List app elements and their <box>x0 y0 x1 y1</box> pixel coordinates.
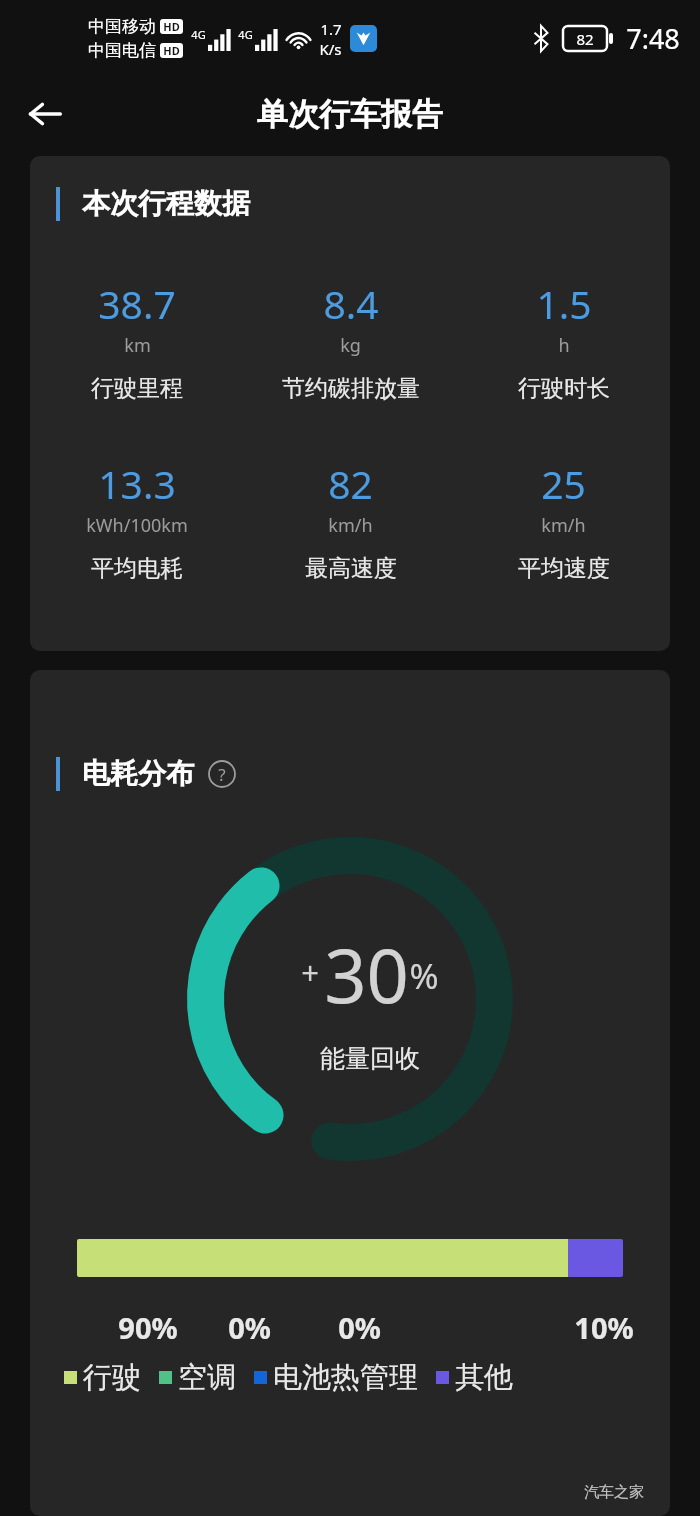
staticText: 82 <box>576 29 594 49</box>
staticText: 4G <box>191 27 206 42</box>
staticText: 汽车之家 <box>584 1483 644 1502</box>
staticText: km <box>124 333 151 358</box>
button[interactable]: 空调 <box>159 1359 236 1396</box>
staticText: h <box>558 333 570 358</box>
staticText: km/h <box>541 513 586 538</box>
staticText: 行驶里程 <box>91 374 183 403</box>
staticText: 最高速度 <box>305 554 397 583</box>
staticText: 82 <box>328 457 373 510</box>
staticText: HD <box>163 19 180 34</box>
staticText: 13.3 <box>98 457 176 510</box>
staticText: 0% <box>338 1308 381 1347</box>
staticText: kg <box>340 333 361 358</box>
staticText: 电池热管理 <box>273 1359 418 1396</box>
staticText: 其他 <box>455 1359 513 1396</box>
staticText: 1.5 <box>536 277 592 330</box>
staticText: + <box>301 951 319 993</box>
staticText: 电耗分布 <box>82 756 194 791</box>
staticText: km/h <box>328 513 373 538</box>
staticText: HD <box>163 43 180 58</box>
button[interactable]: Back <box>16 85 74 143</box>
staticText: 30 <box>324 924 409 1025</box>
staticText: 1.7 <box>320 19 342 39</box>
staticText: 空调 <box>178 1359 236 1396</box>
staticText: 行驶 <box>83 1359 141 1396</box>
staticText: K/s <box>319 39 342 59</box>
staticText: 38.7 <box>98 277 176 330</box>
staticText: 0% <box>228 1308 271 1347</box>
staticText: 7:48 <box>626 20 680 57</box>
staticText: 节约碳排放量 <box>282 374 420 403</box>
staticText: 能量回收 <box>320 1043 420 1074</box>
staticText: 8.4 <box>323 277 379 330</box>
button[interactable]: 其他 <box>436 1359 513 1396</box>
staticText: 10% <box>574 1308 634 1347</box>
staticText: % <box>409 952 439 1000</box>
staticText: 中国电信 <box>88 40 156 61</box>
staticText: 中国移动 <box>88 16 156 37</box>
button[interactable]: 电池热管理 <box>254 1359 418 1396</box>
staticText: 本次行程数据 <box>82 186 250 221</box>
staticText: 单次行车报告 <box>257 95 443 134</box>
staticText: 4G <box>238 27 253 42</box>
staticText: 平均电耗 <box>91 554 183 583</box>
staticText: ? <box>218 763 226 786</box>
staticText: 90% <box>118 1308 178 1347</box>
staticText: 25 <box>541 457 586 510</box>
staticText: 行驶时长 <box>518 374 610 403</box>
button[interactable]: Help <box>206 758 238 790</box>
staticText: kWh/100km <box>86 513 188 538</box>
button[interactable]: 行驶 <box>64 1359 141 1396</box>
staticText: 平均速度 <box>518 554 610 583</box>
